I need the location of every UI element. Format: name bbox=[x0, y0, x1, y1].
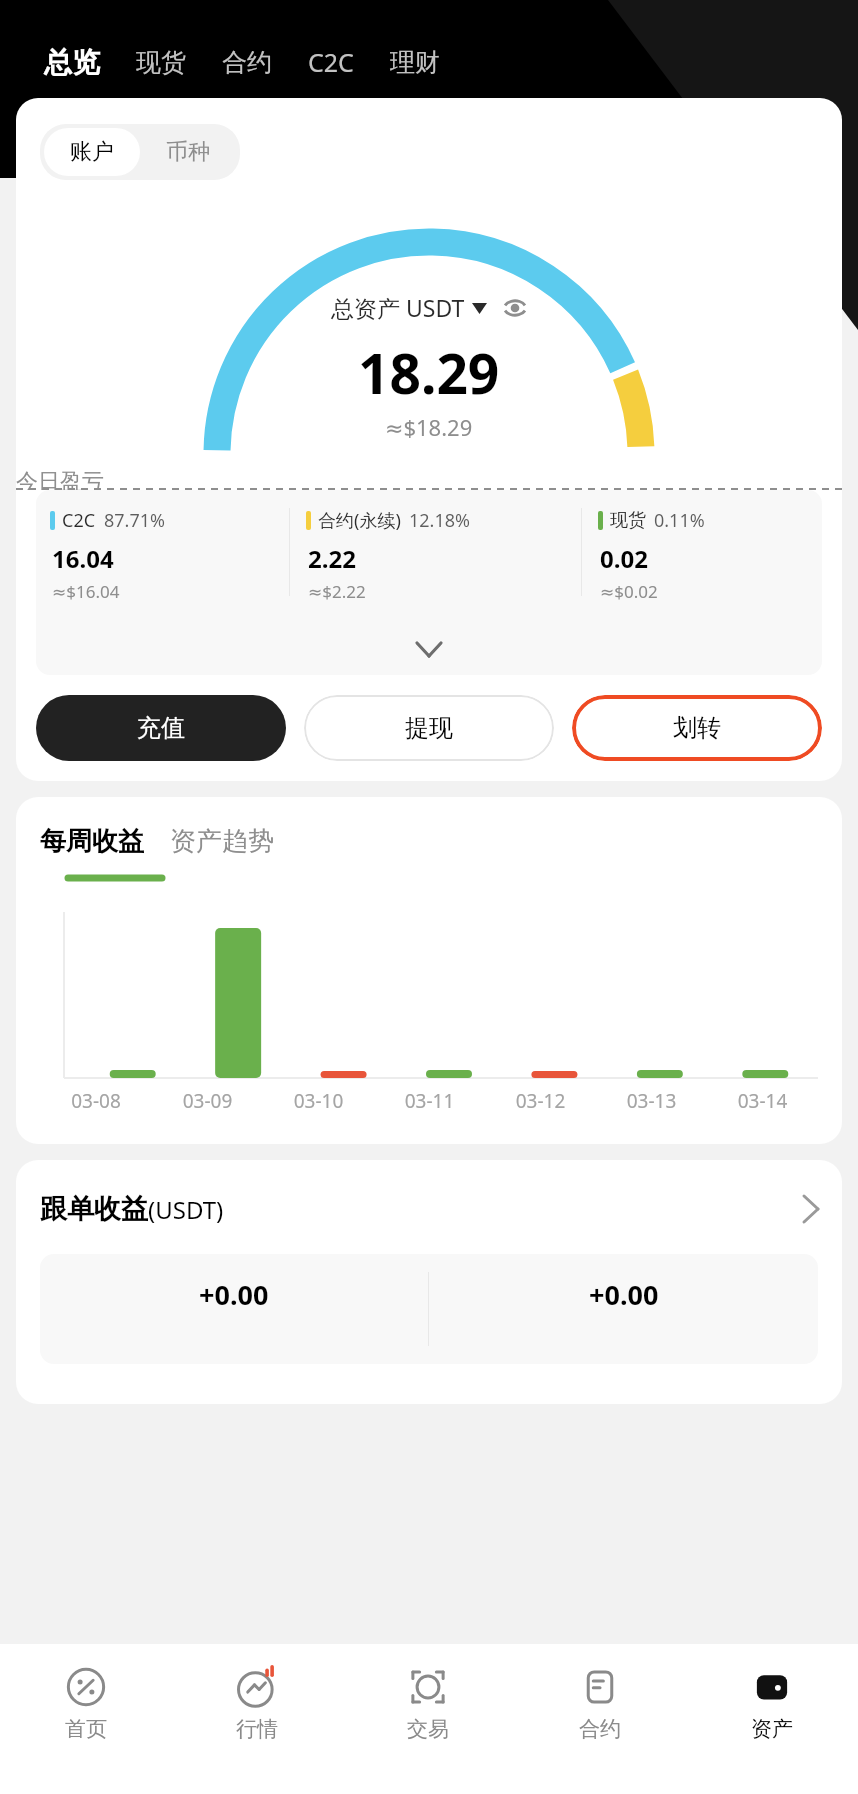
button[interactable]: 资产 bbox=[686, 1644, 858, 1794]
button[interactable]: 跟单收益 bbox=[16, 1160, 842, 1226]
staticText: 现货 bbox=[136, 47, 186, 78]
staticText: (USDT) bbox=[148, 1193, 224, 1226]
staticText: 合约 bbox=[579, 1716, 621, 1742]
staticText: 首页 bbox=[65, 1716, 107, 1742]
staticText: ≈$16.04 bbox=[52, 580, 120, 603]
button[interactable]: 提现 bbox=[304, 695, 554, 761]
staticText: 资产趋势 bbox=[170, 825, 274, 858]
button[interactable]: Expand details bbox=[36, 623, 822, 675]
button[interactable]: C2C bbox=[290, 35, 372, 89]
staticText: 行情 bbox=[236, 1716, 278, 1742]
button[interactable]: 合约 bbox=[514, 1644, 686, 1794]
staticText: 03-09 bbox=[152, 1088, 263, 1114]
staticText: ≈$2.22 bbox=[308, 580, 366, 603]
staticText: ≈$0.02 bbox=[600, 580, 658, 603]
staticText: 87.71% bbox=[104, 508, 165, 533]
staticText: 每周收益 bbox=[40, 825, 144, 858]
staticText: 0.11% bbox=[654, 508, 705, 533]
staticText: 03-10 bbox=[263, 1088, 374, 1114]
staticText: 账户 bbox=[70, 138, 114, 166]
button[interactable]: 合约 bbox=[204, 37, 290, 88]
staticText: 03-14 bbox=[707, 1088, 818, 1114]
staticText: C2C bbox=[308, 45, 354, 79]
staticText: 提现 bbox=[405, 713, 453, 743]
staticText: 18.29 bbox=[358, 335, 500, 410]
staticText: 2.22 bbox=[308, 542, 356, 575]
staticText: 合约 bbox=[222, 47, 272, 78]
staticText: C2C bbox=[62, 508, 96, 533]
staticText: ≈$18.29 bbox=[385, 412, 473, 442]
button[interactable]: 行情 bbox=[171, 1644, 342, 1794]
button[interactable]: 资产趋势 bbox=[170, 825, 274, 858]
staticText: 03-11 bbox=[374, 1088, 485, 1114]
staticText: +0.00 bbox=[589, 1276, 659, 1313]
button[interactable]: 充值 bbox=[36, 695, 286, 761]
staticText: 现货 bbox=[610, 509, 646, 532]
button[interactable]: 账户 bbox=[44, 128, 140, 176]
button[interactable]: 总览 bbox=[26, 35, 118, 90]
staticText: 12.18% bbox=[409, 508, 470, 533]
staticText: 理财 bbox=[390, 47, 440, 78]
staticText: 03-12 bbox=[485, 1088, 596, 1114]
staticText: +0.00 bbox=[199, 1276, 269, 1313]
staticText: 划转 bbox=[673, 713, 721, 743]
staticText: 0.02 bbox=[600, 542, 648, 575]
staticText: 16.04 bbox=[52, 542, 114, 575]
staticText: 资产 bbox=[751, 1716, 793, 1742]
button[interactable]: 币种 bbox=[140, 128, 236, 176]
staticText: 合约(永续) bbox=[318, 508, 401, 533]
staticText: 03-08 bbox=[40, 1088, 152, 1114]
staticText: 今日盈亏 bbox=[16, 468, 104, 490]
staticText: 充值 bbox=[137, 713, 185, 743]
staticText: 币种 bbox=[166, 138, 210, 166]
button[interactable]: 今日盈亏 bbox=[16, 468, 842, 490]
staticText: 交易 bbox=[407, 1716, 449, 1742]
button[interactable]: 划转 bbox=[572, 695, 822, 761]
staticText: 总资产 USDT bbox=[331, 292, 465, 323]
button[interactable]: 交易 bbox=[342, 1644, 514, 1794]
staticText: 跟单收益 bbox=[40, 1192, 148, 1226]
staticText: 03-13 bbox=[596, 1088, 707, 1114]
button[interactable]: 现货 bbox=[118, 37, 204, 88]
staticText: 总览 bbox=[44, 45, 100, 80]
button[interactable]: Toggle balance visibility bbox=[503, 296, 527, 320]
button[interactable]: 理财 bbox=[372, 37, 458, 88]
button[interactable]: 每周收益 bbox=[40, 825, 144, 858]
button[interactable]: 总资产 USDT bbox=[331, 292, 527, 323]
button[interactable]: 首页 bbox=[0, 1644, 171, 1794]
